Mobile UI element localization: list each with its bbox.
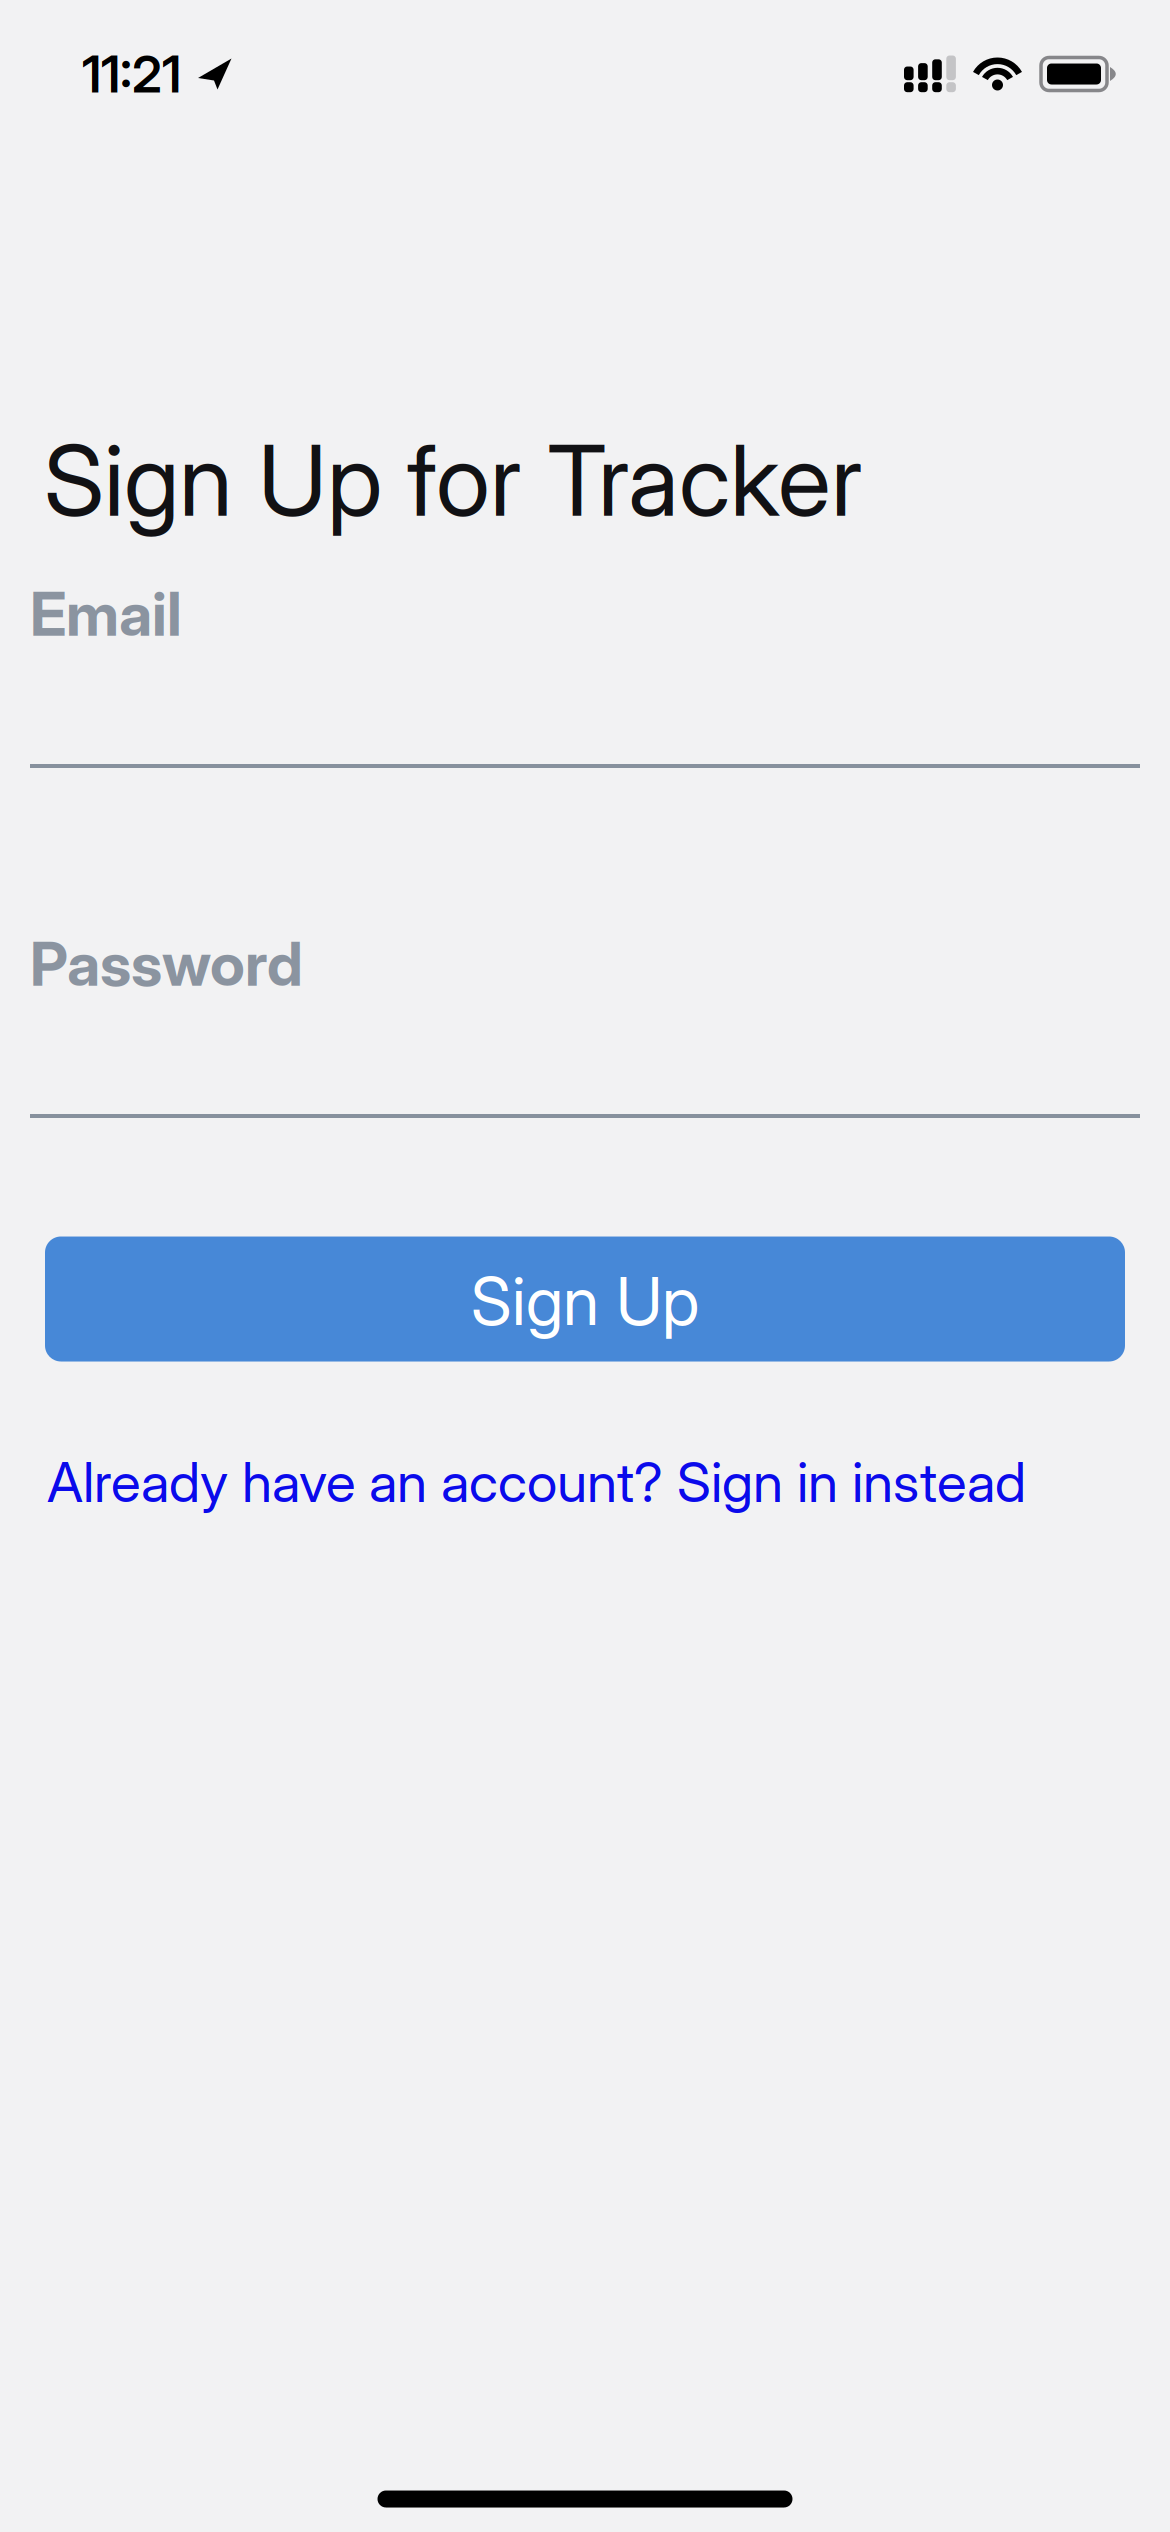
staticText: 11:21 (82, 44, 181, 104)
staticText: Sign Up for Tracker (44, 422, 863, 538)
staticText: Password (30, 929, 303, 999)
button[interactable]: Sign Up (45, 1236, 1125, 1361)
staticText: Already have an account? Sign in instead (47, 1450, 1026, 1514)
staticText: Email (30, 579, 182, 649)
button[interactable]: Already have an account? Sign in instead (47, 1450, 1026, 1514)
textField[interactable]: Email (30, 579, 182, 649)
secureTextField[interactable]: Password (30, 929, 303, 999)
staticText: Sign Up (471, 1262, 699, 1340)
